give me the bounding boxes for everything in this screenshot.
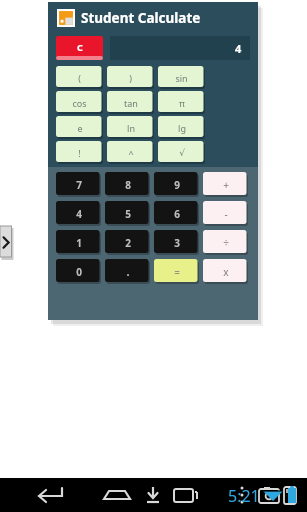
staticText: !: [78, 147, 81, 159]
button[interactable]: tan: [107, 91, 154, 114]
button[interactable]: 5: [105, 201, 150, 226]
staticText: 5: [125, 207, 131, 221]
staticText: sin: [175, 72, 188, 84]
staticText: 5:21: [228, 485, 260, 507]
button[interactable]: .: [105, 259, 150, 284]
button[interactable]: Open drawer: [0, 226, 13, 259]
staticText: +: [223, 178, 229, 192]
staticText: ): [129, 72, 132, 84]
button[interactable]: (: [56, 66, 103, 89]
button[interactable]: e: [56, 116, 103, 139]
staticText: 8: [125, 178, 131, 192]
button[interactable]: π: [158, 91, 205, 114]
staticText: e: [77, 122, 83, 134]
button[interactable]: Back: [0, 478, 68, 512]
staticText: 3: [174, 236, 180, 250]
button[interactable]: C: [56, 36, 103, 60]
button[interactable]: cos: [56, 91, 103, 114]
staticText: ln: [127, 122, 135, 134]
button[interactable]: sin: [158, 66, 205, 89]
staticText: -: [224, 207, 228, 221]
staticText: lg: [178, 122, 186, 134]
button[interactable]: !: [56, 141, 103, 164]
button[interactable]: Recents: [272, 478, 307, 512]
button[interactable]: 0: [56, 259, 101, 284]
staticText: 4: [76, 207, 82, 221]
button[interactable]: 8: [105, 172, 150, 197]
staticText: x: [223, 265, 229, 279]
staticText: ÷: [223, 236, 229, 250]
staticText: 1: [76, 236, 82, 250]
staticText: 7: [76, 178, 82, 192]
button[interactable]: =: [154, 259, 199, 284]
staticText: =: [174, 265, 180, 279]
staticText: (: [78, 72, 81, 84]
staticText: tan: [124, 97, 138, 109]
button[interactable]: 7: [56, 172, 101, 197]
staticText: .: [126, 264, 130, 279]
button[interactable]: ÷: [203, 230, 248, 255]
button[interactable]: ): [107, 66, 154, 89]
staticText: 4: [235, 41, 242, 56]
staticText: 0: [76, 265, 82, 279]
staticText: 2: [125, 236, 131, 250]
staticText: √: [179, 148, 185, 158]
button[interactable]: 3: [154, 230, 199, 255]
staticText: C: [77, 41, 83, 53]
button[interactable]: Home: [136, 478, 204, 512]
button[interactable]: √: [158, 141, 205, 164]
button[interactable]: 2: [105, 230, 150, 255]
button[interactable]: x: [203, 259, 248, 284]
staticText: Student Calculate: [81, 9, 201, 27]
staticText: 9: [174, 178, 180, 192]
button[interactable]: 6: [154, 201, 199, 226]
button[interactable]: -: [203, 201, 248, 226]
button[interactable]: lg: [158, 116, 205, 139]
button[interactable]: ln: [107, 116, 154, 139]
staticText: 6: [174, 207, 180, 221]
button[interactable]: ^: [107, 141, 154, 164]
staticText: ^: [128, 147, 134, 159]
staticText: cos: [72, 97, 87, 109]
button[interactable]: 4: [56, 201, 101, 226]
staticText: π: [179, 97, 185, 109]
button[interactable]: +: [203, 172, 248, 197]
button[interactable]: 9: [154, 172, 199, 197]
button[interactable]: 1: [56, 230, 101, 255]
